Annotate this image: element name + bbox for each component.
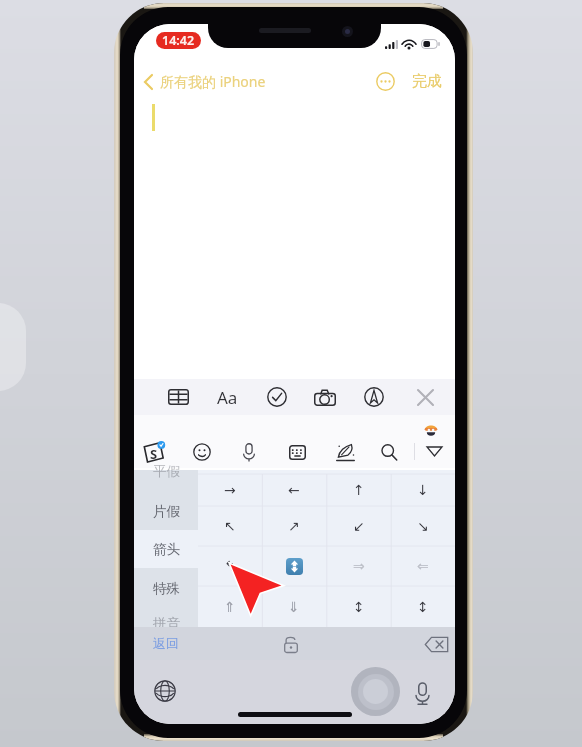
button[interactable]: Checklist [259,379,295,415]
button[interactable]: ⇑ [198,586,262,627]
button[interactable]: ⇐ [391,546,455,586]
staticText: ⇐ [417,558,429,574]
button[interactable]: 完成 [410,70,444,93]
staticText: 拼音 [153,615,180,632]
button[interactable]: Camera [307,379,343,415]
staticText: ↕ [353,599,365,615]
staticText: ← [288,482,300,498]
staticText: ↖ [224,518,236,534]
button[interactable]: ↙ [327,506,391,546]
button[interactable]: 片假 [134,492,198,530]
staticText: ⇒ [353,558,365,574]
button[interactable]: ↓ [391,474,455,506]
button[interactable]: ↕ [327,586,391,627]
button[interactable]: ⇓ [262,586,326,627]
staticText: 返回 [153,635,179,651]
button[interactable]: 返回 [140,630,192,656]
button[interactable]: Text format [209,379,245,415]
staticText: ⇑ [224,599,236,615]
button[interactable]: ⇒ [327,546,391,586]
staticText: 片假 [153,503,180,520]
button[interactable]: 箭头 [134,530,198,568]
staticText: 完成 [412,72,442,91]
staticText: 14:42 [162,32,195,49]
button[interactable]: ↑ [327,474,391,506]
button[interactable]: Close [407,379,443,415]
button[interactable]: Hide keyboard [417,434,451,468]
button[interactable]: Search [372,435,406,469]
button[interactable]: Sogou input [136,435,170,469]
staticText: 平假 [153,463,180,480]
staticText: 箭头 [153,541,180,558]
staticText: ↰ [224,558,236,574]
button[interactable]: → [198,474,262,506]
button[interactable]: ↘ [391,506,455,546]
staticText: S [150,445,158,463]
button[interactable]: ↗ [262,506,326,546]
button[interactable]: ↖ [198,506,262,546]
button[interactable]: 平假 [134,452,198,490]
button[interactable] [262,546,326,586]
button[interactable]: Lock [274,627,308,661]
staticText: ⇓ [288,599,300,615]
staticText: ↙ [353,518,365,534]
button[interactable]: More options [372,68,398,94]
staticText: 所有我的 iPhone [160,72,266,91]
staticText: 特殊 [153,580,180,597]
button[interactable]: Markup [356,379,392,415]
staticText: ↗ [288,518,300,534]
button[interactable]: Keyboard [280,435,314,469]
button[interactable]: ← [262,474,326,506]
button[interactable]: Emoji [185,435,219,469]
button[interactable]: Table [160,379,196,415]
staticText: ↑ [353,482,365,498]
staticText: Aa [217,386,238,409]
staticText: → [224,482,236,498]
button[interactable]: ↕ [391,586,455,627]
button[interactable]: 所有我的 iPhone [138,67,272,96]
button[interactable]: Delete [418,626,454,662]
staticText: ↕ [417,599,429,615]
button[interactable]: Dictate [408,679,436,707]
staticText: ↘ [417,518,429,534]
button[interactable]: Change keyboard [150,676,180,706]
button[interactable]: 拼音 [134,604,198,642]
button[interactable]: 特殊 [134,569,198,607]
button[interactable]: Handwriting [328,435,362,469]
button[interactable]: Voice input [232,435,266,469]
button[interactable]: ↰ [198,546,262,586]
staticText: ↓ [417,482,429,498]
